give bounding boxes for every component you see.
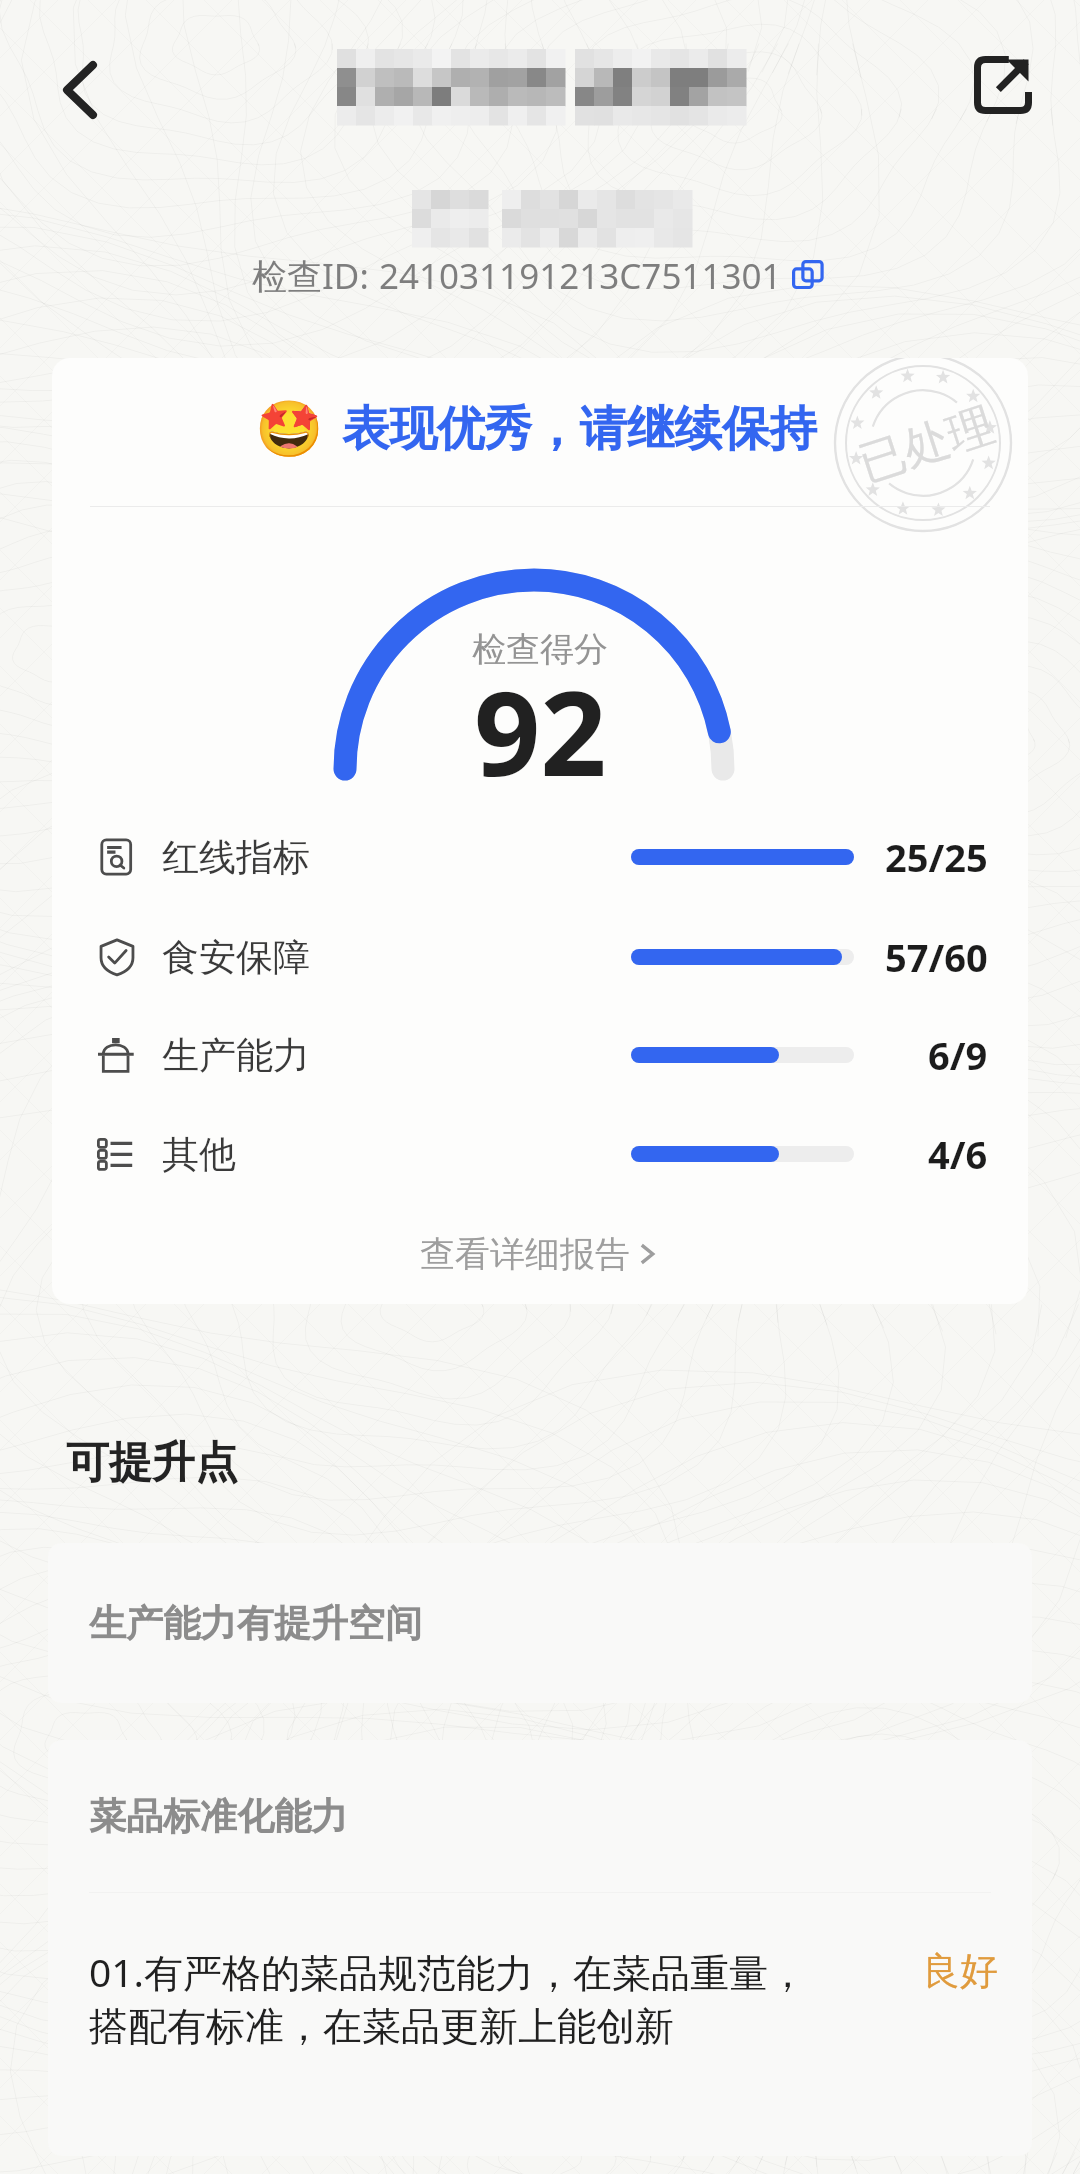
staticText: 生产能力 <box>162 1032 310 1079</box>
staticText: 241031191213C7511301 <box>379 252 782 300</box>
button[interactable]: 生产能力 <box>52 1006 1028 1104</box>
staticText: 已处理 <box>852 396 1001 494</box>
staticText: 6/9 <box>928 1029 988 1081</box>
staticText: 查看详细报告 <box>420 1232 630 1276</box>
button[interactable]: 查看详细报告 <box>52 1218 1028 1290</box>
staticText: 良好 <box>922 1947 998 1995</box>
staticText: 01.有严格的菜品规范能力，在菜品重量，搭配有标准，在菜品更新上能创新 <box>89 1945 819 2051</box>
staticText: 4/6 <box>928 1128 988 1180</box>
button[interactable]: Back <box>30 40 130 140</box>
staticText: 25/25 <box>885 831 988 883</box>
staticText: 57/60 <box>885 931 988 983</box>
staticText: 🤩 <box>255 397 324 461</box>
staticText: 其他 <box>162 1131 236 1178</box>
staticText: 检查ID: <box>252 252 369 300</box>
button[interactable]: 菜品标准化能力 <box>48 1740 1032 1892</box>
staticText: 检查得分 <box>472 628 608 671</box>
button[interactable]: Copy inspection ID <box>788 256 828 296</box>
button[interactable]: 食安保障 <box>52 908 1028 1006</box>
button[interactable]: Share <box>955 37 1051 133</box>
button[interactable]: 其他 <box>52 1105 1028 1203</box>
staticText: 生产能力有提升空间 <box>89 1600 422 1647</box>
button[interactable]: 生产能力有提升空间 <box>48 1543 1032 1703</box>
staticText: 食安保障 <box>162 934 310 981</box>
staticText: 92 <box>474 652 607 810</box>
staticText: 可提升点 <box>66 1436 238 1490</box>
staticText: 表现优秀，请继续保持 <box>342 399 817 459</box>
staticText: 菜品标准化能力 <box>89 1793 348 1840</box>
button[interactable]: 红线指标 <box>52 808 1028 906</box>
staticText: 红线指标 <box>162 834 310 881</box>
